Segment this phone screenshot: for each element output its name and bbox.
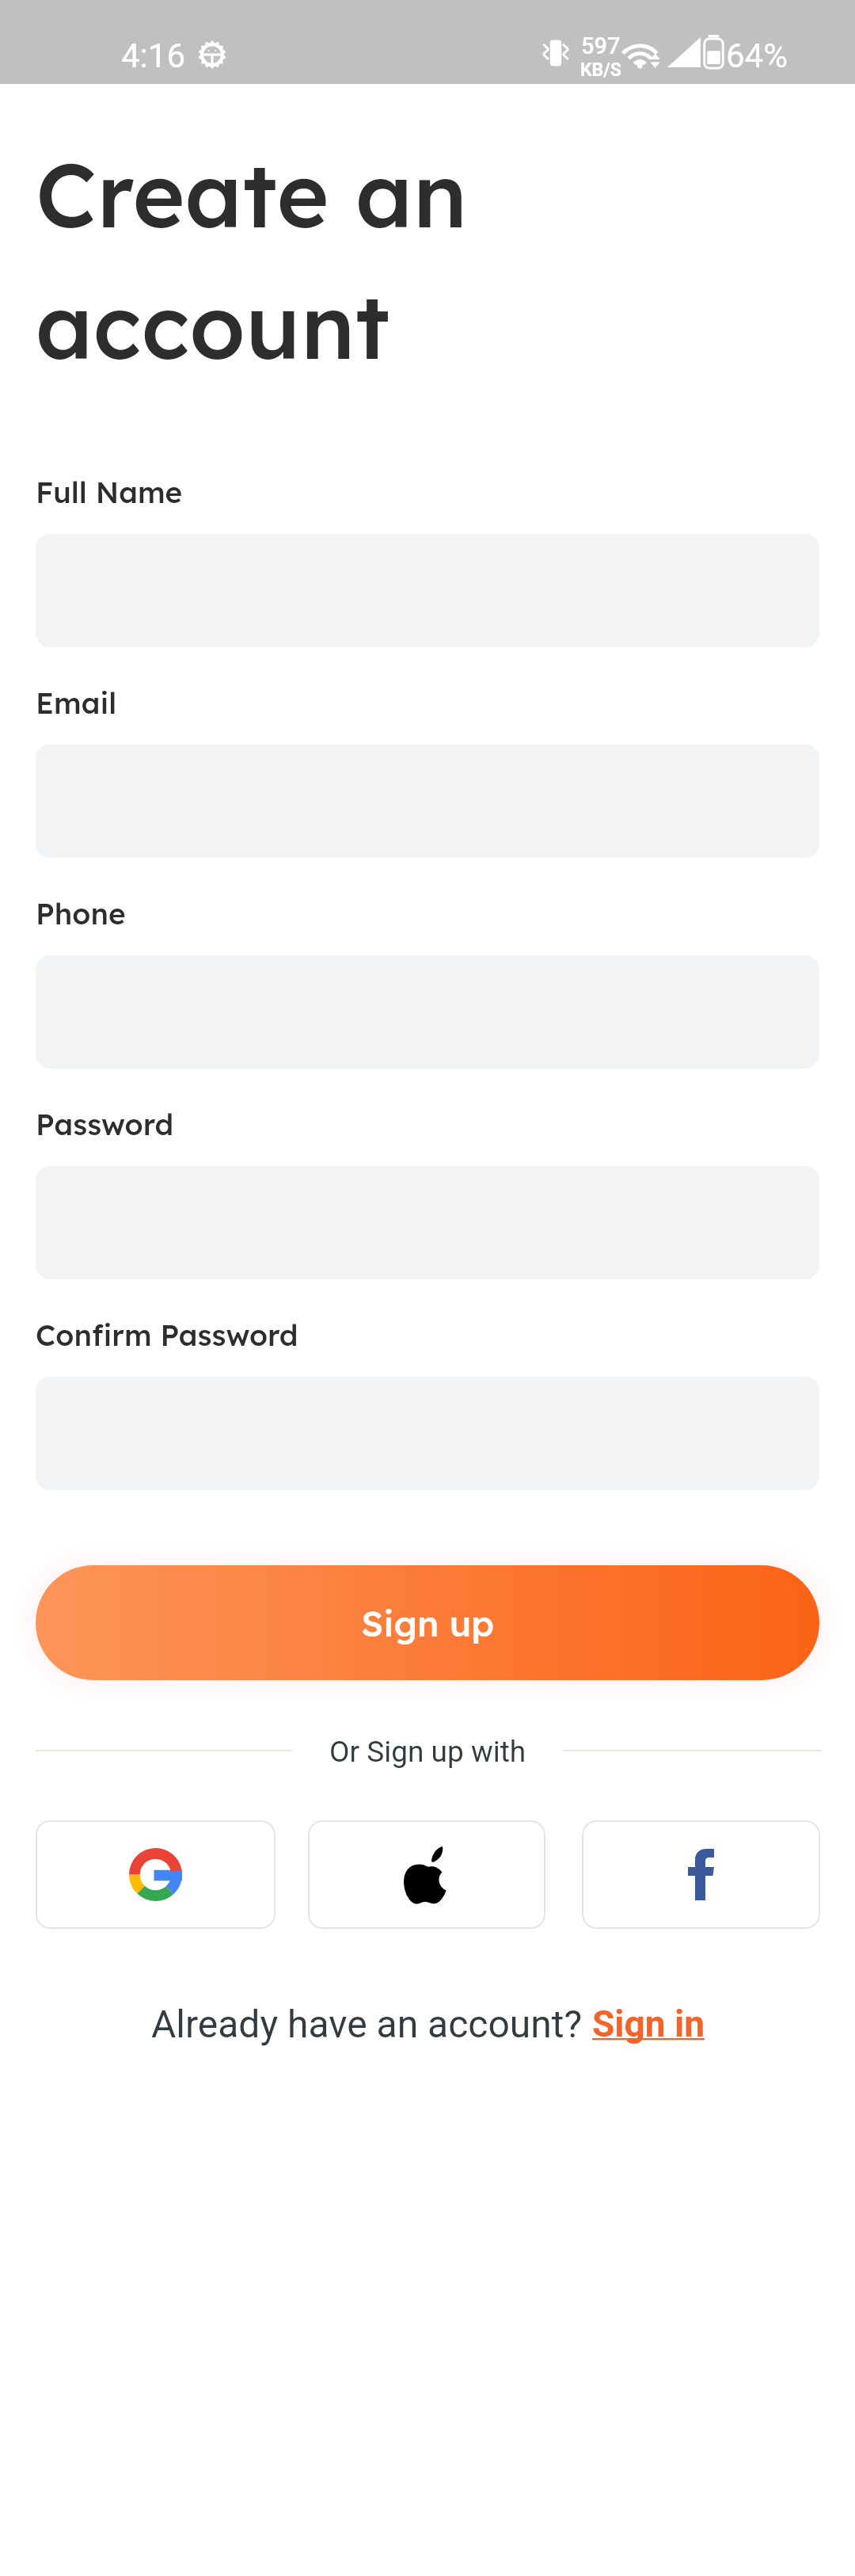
staticText: Or Sign up with [329, 1735, 526, 1769]
staticText: Email [36, 684, 117, 721]
button[interactable]: Sign up with Google [36, 1820, 275, 1929]
staticText: Create an account [36, 138, 468, 381]
button[interactable]: Sign up with Facebook [582, 1820, 820, 1929]
staticText: Sign up [361, 1601, 495, 1645]
staticText: Phone [36, 895, 126, 932]
button[interactable]: Already have an account? [151, 2002, 705, 2046]
staticText: KB/S [580, 59, 621, 81]
staticText: 64% [726, 36, 788, 75]
staticText: Already have an account? [151, 2002, 592, 2046]
staticText: Full Name [36, 474, 183, 510]
staticText: 4:16 [121, 36, 185, 75]
staticText: 597 [581, 32, 621, 59]
button[interactable]: Sign up [36, 1565, 819, 1680]
staticText: Password [36, 1106, 174, 1142]
button[interactable]: Sign up with Apple [308, 1820, 545, 1929]
staticText: Sign in [592, 2002, 705, 2045]
staticText: Confirm Password [36, 1317, 298, 1353]
